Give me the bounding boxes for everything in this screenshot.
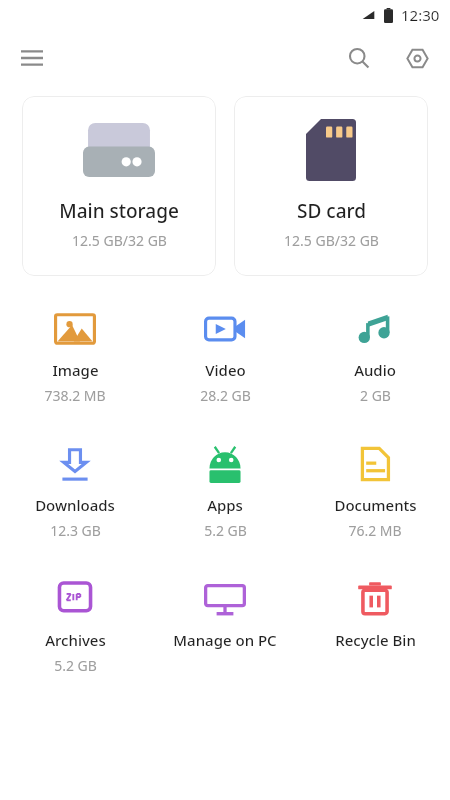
staticText: 12:30 — [401, 5, 440, 25]
staticText: Video — [205, 360, 246, 380]
button[interactable]: Documents — [300, 439, 450, 544]
button[interactable]: Image — [0, 304, 150, 409]
staticText: 5.2 GB — [204, 521, 247, 540]
staticText: 12.5 GB/32 GB — [284, 231, 379, 250]
button[interactable]: Manage on PC — [150, 574, 300, 654]
staticText: Recycle Bin — [335, 630, 416, 650]
staticText: 76.2 MB — [348, 521, 402, 540]
button[interactable]: Main storage — [22, 96, 216, 276]
staticText: Main storage — [59, 198, 179, 224]
staticText: 738.2 MB — [44, 386, 106, 405]
button[interactable]: SD card — [234, 96, 428, 276]
staticText: 5.2 GB — [54, 656, 97, 675]
staticText: 12.3 GB — [50, 521, 101, 540]
button[interactable]: Audio — [300, 304, 450, 409]
button[interactable]: Downloads — [0, 439, 150, 544]
staticText: Audio — [354, 360, 396, 380]
staticText: 28.2 GB — [200, 386, 251, 405]
staticText: 12.5 GB/32 GB — [72, 231, 167, 250]
staticText: Image — [52, 360, 99, 380]
staticText: Archives — [45, 630, 106, 650]
button[interactable]: Search — [336, 35, 382, 81]
staticText: Manage on PC — [173, 630, 277, 650]
staticText: Apps — [207, 495, 243, 515]
button[interactable]: Video — [150, 304, 300, 409]
button[interactable]: Settings — [394, 35, 440, 81]
staticText: SD card — [297, 198, 366, 224]
button[interactable]: Menu — [8, 34, 56, 82]
button[interactable]: Apps — [150, 439, 300, 544]
staticText: 2 GB — [360, 386, 391, 405]
button[interactable]: Recycle Bin — [300, 574, 450, 654]
staticText: Downloads — [35, 495, 115, 515]
button[interactable]: Archives — [0, 574, 150, 679]
staticText: Documents — [334, 495, 417, 515]
